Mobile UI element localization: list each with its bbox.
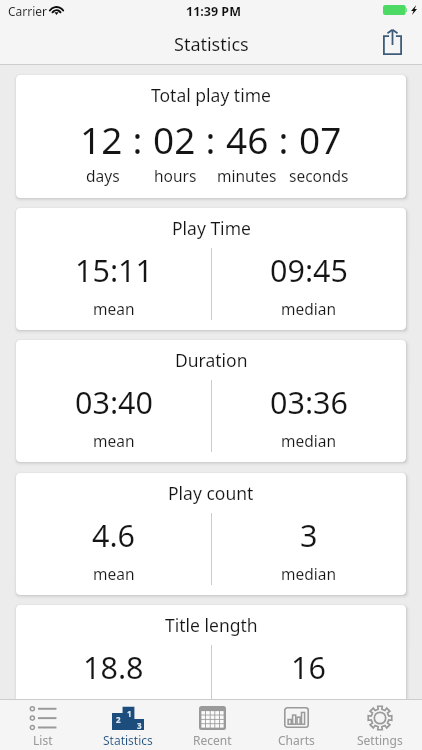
staticText: Carrier — [8, 3, 48, 19]
staticText: : — [196, 114, 226, 164]
staticText: seconds — [289, 165, 349, 186]
staticText: median — [281, 563, 337, 584]
staticText: : — [269, 114, 299, 164]
staticText: 4.6 — [92, 514, 136, 556]
staticText: 11:39 PM — [186, 3, 241, 20]
staticText: 18.8 — [83, 646, 144, 688]
staticText: median — [281, 695, 337, 716]
staticText: List — [33, 732, 53, 748]
staticText: 2 — [116, 714, 121, 725]
button[interactable]: Charts — [254, 704, 338, 750]
staticText: : — [123, 114, 153, 164]
staticText: Statistics — [174, 32, 249, 57]
staticText: mean — [93, 563, 135, 584]
staticText: median — [281, 298, 337, 319]
button[interactable]: Share — [374, 21, 410, 61]
staticText: Title length — [165, 613, 258, 637]
staticText: Duration — [175, 348, 248, 372]
staticText: 07 — [299, 114, 342, 164]
button[interactable]: Recent — [170, 704, 254, 750]
staticText: Play Time — [172, 216, 251, 240]
button[interactable]: 1 — [85, 704, 170, 750]
staticText: 16 — [291, 646, 326, 688]
staticText: 3 — [300, 514, 318, 556]
button[interactable]: List — [0, 704, 85, 750]
staticText: 02 — [153, 114, 196, 164]
staticText: 46 — [226, 114, 269, 164]
staticText: Settings — [357, 732, 403, 748]
staticText: Statistics — [103, 732, 153, 748]
staticText: 12 — [80, 114, 123, 164]
staticText: 3 — [137, 720, 142, 731]
staticText: 15:11 — [75, 249, 153, 291]
staticText: mean — [93, 430, 135, 451]
staticText: hours — [154, 165, 197, 186]
staticText: mean — [93, 298, 135, 319]
staticText: mean — [93, 695, 135, 716]
staticText: 09:45 — [270, 249, 348, 291]
button[interactable]: Settings — [338, 704, 422, 750]
staticText: minutes — [217, 165, 277, 186]
staticText: Play count — [168, 481, 254, 505]
staticText: median — [281, 430, 337, 451]
staticText: 03:36 — [270, 381, 348, 423]
staticText: days — [86, 165, 120, 186]
staticText: Total play time — [151, 83, 271, 107]
staticText: 03:40 — [75, 381, 153, 423]
staticText: 1 — [127, 708, 132, 719]
staticText: Charts — [278, 732, 315, 748]
staticText: Recent — [193, 732, 232, 748]
